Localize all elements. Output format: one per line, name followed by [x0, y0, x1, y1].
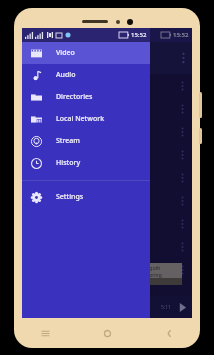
staticText: Directories [56, 92, 93, 102]
staticText: History [56, 158, 81, 168]
staticText: n Spring [142, 272, 162, 279]
button[interactable]: Back [138, 320, 200, 346]
button[interactable] [22, 120, 192, 143]
button[interactable] [22, 235, 192, 258]
button[interactable]: Local Network [22, 108, 150, 130]
staticText: 15:52 [131, 31, 147, 39]
staticText: 5:11 [161, 304, 171, 311]
button[interactable] [22, 74, 192, 97]
button[interactable]: Recents [14, 320, 76, 346]
staticText: Local Network [56, 114, 105, 124]
button[interactable]: Stream [22, 130, 150, 152]
staticText: Audio [56, 70, 76, 80]
button[interactable] [22, 166, 192, 189]
button[interactable]: Video [22, 42, 150, 64]
button[interactable] [22, 212, 192, 235]
button[interactable]: Directories [22, 86, 150, 108]
button[interactable] [22, 143, 192, 166]
button[interactable] [22, 97, 192, 120]
staticText: Magoth [142, 265, 161, 272]
button[interactable]: Play [176, 301, 188, 313]
button[interactable] [22, 189, 192, 212]
button[interactable]: History [22, 152, 150, 174]
button[interactable] [22, 258, 192, 281]
button[interactable]: Audio [22, 64, 150, 86]
staticText: 15:52 [173, 31, 189, 39]
button[interactable]: Settings [22, 186, 150, 208]
staticText: Settings [56, 192, 84, 202]
button[interactable]: More options [182, 52, 185, 64]
button[interactable]: Home [76, 320, 138, 346]
staticText: Video [56, 48, 75, 58]
staticText: Stream [56, 136, 81, 146]
